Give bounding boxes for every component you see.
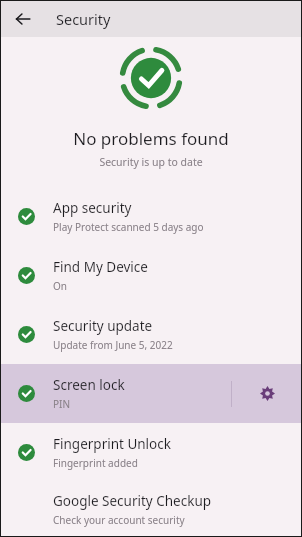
staticText: Find My Device <box>53 258 148 276</box>
staticText: On <box>53 279 67 293</box>
staticText: Screen lock <box>53 376 125 394</box>
staticText: Update from June 5, 2022 <box>53 338 173 352</box>
staticText: PIN <box>53 397 71 411</box>
button[interactable]: Fingerprint Unlock <box>0 423 302 482</box>
button[interactable]: Back <box>10 6 36 32</box>
button[interactable]: Security update <box>0 305 302 364</box>
staticText: Fingerprint added <box>53 456 138 470</box>
button[interactable]: Find My Device <box>0 246 302 305</box>
button[interactable]: Screen lock <box>0 364 302 423</box>
button[interactable]: Google Security Checkup <box>0 482 302 537</box>
staticText: Google Security Checkup <box>53 492 212 510</box>
button[interactable]: App security <box>0 187 302 246</box>
staticText: Security <box>56 9 111 29</box>
staticText: Security update <box>53 317 153 335</box>
staticText: App security <box>53 199 132 217</box>
button[interactable]: Screen lock settings <box>232 364 302 423</box>
staticText: Play Protect scanned 5 days ago <box>53 220 204 234</box>
staticText: Fingerprint Unlock <box>53 435 171 453</box>
staticText: Security is up to date <box>0 155 302 169</box>
staticText: Check your account security <box>53 513 185 527</box>
staticText: No problems found <box>0 127 302 150</box>
